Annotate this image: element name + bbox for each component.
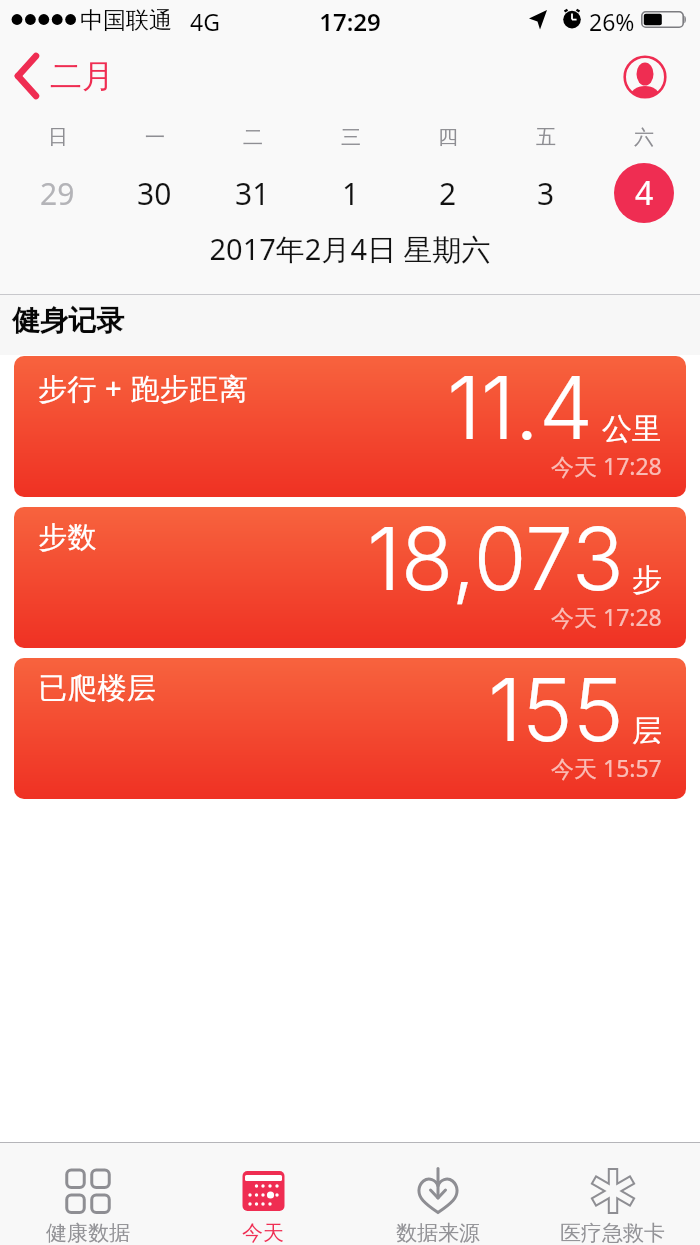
button[interactable]: 步行 + 跑步距离 bbox=[14, 356, 686, 497]
staticText: 2 bbox=[439, 173, 457, 214]
button[interactable]: 今天 bbox=[175, 1168, 350, 1245]
button[interactable]: 31 bbox=[204, 163, 301, 223]
staticText: 公里 bbox=[602, 410, 662, 448]
staticText: 今天 17:28 bbox=[551, 601, 662, 632]
staticText: 步行 + 跑步距离 bbox=[38, 368, 249, 408]
staticText: 健康数据 bbox=[46, 1220, 130, 1245]
staticText: 11.4 bbox=[447, 356, 594, 460]
staticText: 步数 bbox=[38, 519, 97, 556]
staticText: 今天 17:28 bbox=[551, 450, 662, 481]
staticText: 已爬楼层 bbox=[38, 670, 156, 707]
button[interactable]: 二月 bbox=[12, 52, 114, 100]
button[interactable]: 1 bbox=[302, 163, 399, 223]
button[interactable]: 29 bbox=[9, 163, 106, 223]
button[interactable]: 3 bbox=[497, 163, 594, 223]
button[interactable] bbox=[623, 55, 667, 99]
staticText: 日 bbox=[48, 125, 68, 150]
button[interactable]: 2 bbox=[399, 163, 496, 223]
staticText: 4G bbox=[190, 6, 220, 37]
staticText: 医疗急救卡 bbox=[560, 1220, 665, 1245]
button[interactable]: 医疗急救卡 bbox=[525, 1168, 700, 1245]
staticText: 30 bbox=[137, 173, 172, 214]
staticText: 18,073 bbox=[367, 507, 624, 611]
staticText: 今天 bbox=[242, 1220, 284, 1245]
button[interactable]: 30 bbox=[106, 163, 203, 223]
staticText: 3 bbox=[537, 173, 555, 214]
staticText: 六 bbox=[634, 125, 654, 150]
staticText: 今天 15:57 bbox=[551, 752, 662, 783]
staticText: 1 bbox=[342, 173, 360, 214]
button[interactable]: 数据来源 bbox=[350, 1168, 525, 1245]
staticText: 二月 bbox=[50, 56, 114, 96]
staticText: 155 bbox=[488, 658, 624, 762]
staticText: 三 bbox=[341, 125, 361, 150]
button[interactable]: 健康数据 bbox=[0, 1168, 175, 1245]
staticText: 数据来源 bbox=[396, 1220, 480, 1245]
staticText: 29 bbox=[40, 173, 75, 214]
staticText: 二 bbox=[243, 125, 263, 150]
staticText: 四 bbox=[438, 125, 458, 150]
staticText: 健身记录 bbox=[12, 303, 124, 338]
staticText: 层 bbox=[632, 712, 662, 750]
staticText: 一 bbox=[145, 125, 165, 150]
staticText: 中国联通 bbox=[80, 6, 172, 35]
staticText: 步 bbox=[632, 561, 662, 599]
staticText: 五 bbox=[536, 125, 556, 150]
button[interactable]: 4 bbox=[595, 163, 692, 223]
staticText: 4 bbox=[635, 171, 654, 215]
staticText: 26% bbox=[589, 6, 635, 37]
staticText: 2017年2月4日 星期六 bbox=[0, 229, 700, 269]
button[interactable]: 已爬楼层 bbox=[14, 658, 686, 799]
button[interactable]: 步数 bbox=[14, 507, 686, 648]
staticText: 31 bbox=[235, 173, 270, 214]
staticText: 17:29 bbox=[0, 5, 700, 38]
